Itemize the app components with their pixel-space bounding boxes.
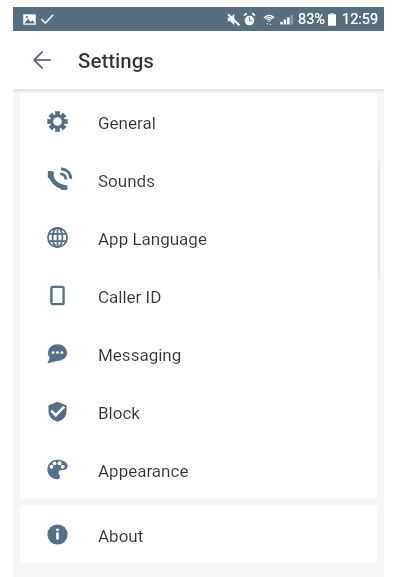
button[interactable]: Back xyxy=(22,40,62,80)
button[interactable]: Block xyxy=(20,382,377,440)
staticText: Settings xyxy=(78,49,154,73)
staticText: 12:59 xyxy=(342,11,379,28)
button[interactable]: Caller ID xyxy=(20,266,377,324)
button[interactable]: General xyxy=(20,92,377,150)
button[interactable]: Appearance xyxy=(20,440,377,498)
button[interactable]: About xyxy=(20,505,377,563)
staticText: Block xyxy=(98,403,140,423)
staticText: Sounds xyxy=(98,171,155,191)
staticText: Messaging xyxy=(98,345,182,365)
button[interactable]: Messaging xyxy=(20,324,377,382)
staticText: About xyxy=(98,526,144,546)
staticText: General xyxy=(98,113,156,133)
button[interactable]: App Language xyxy=(20,208,377,266)
staticText: Caller ID xyxy=(98,287,162,307)
staticText: 83% xyxy=(298,11,325,28)
staticText: Appearance xyxy=(98,461,189,481)
button[interactable]: Sounds xyxy=(20,150,377,208)
staticText: App Language xyxy=(98,229,207,249)
